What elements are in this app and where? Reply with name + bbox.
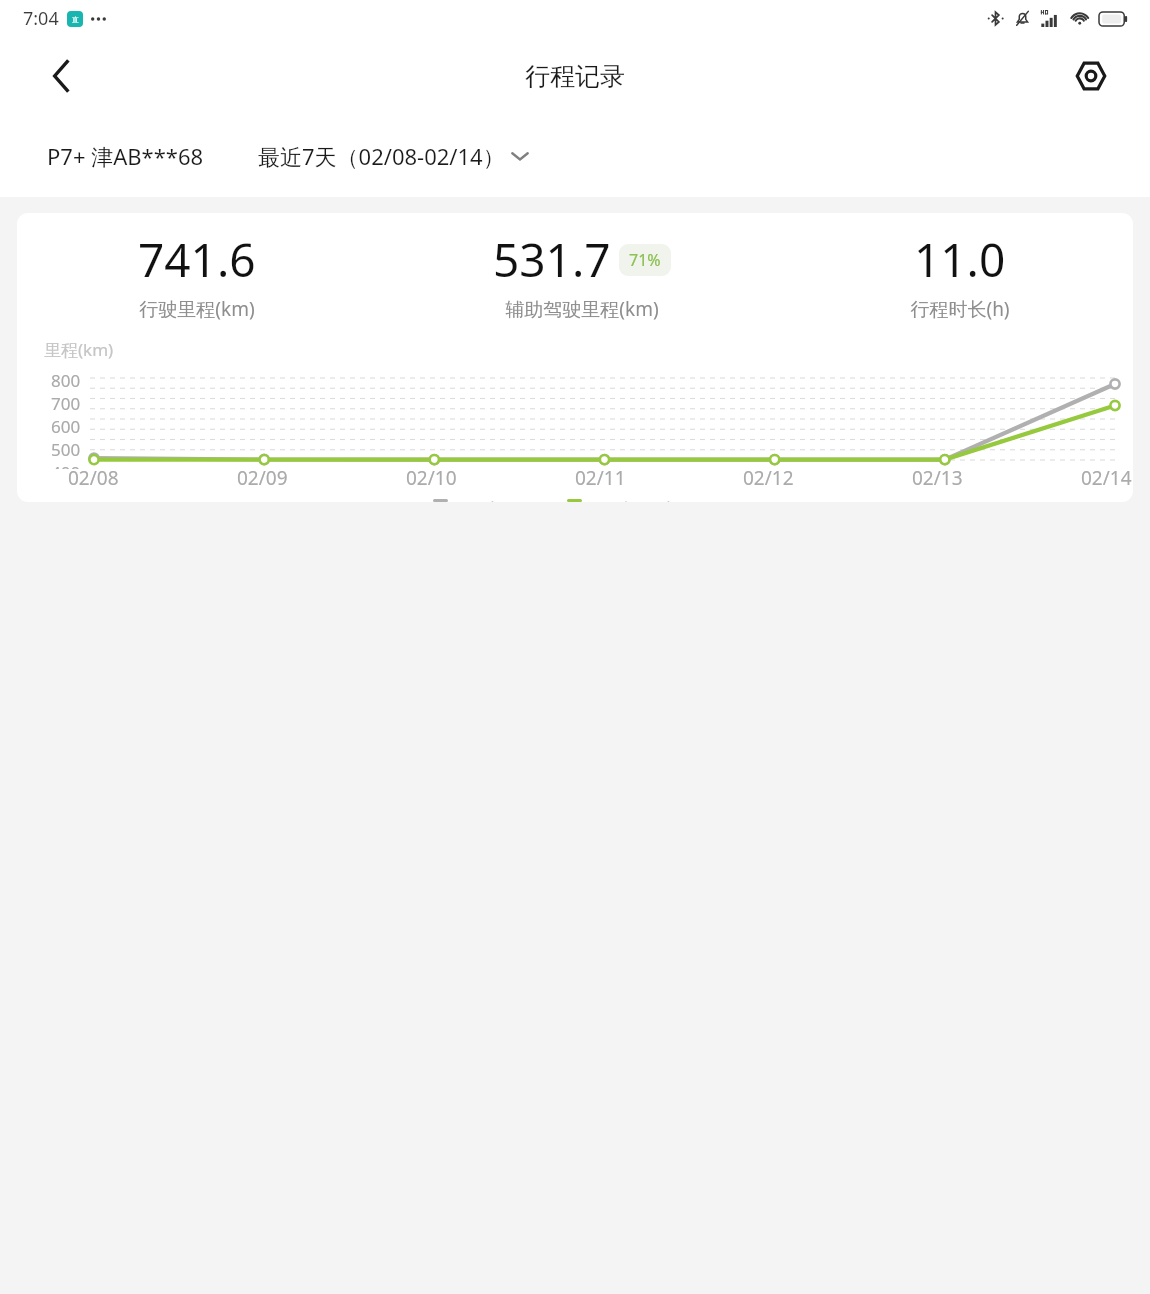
staticText: 02/10	[406, 465, 457, 491]
staticText: 02/09	[237, 465, 288, 491]
staticText: 02/12	[743, 465, 794, 491]
staticText: 最近7天（02/08-02/14）	[258, 141, 505, 171]
staticText: 11.0	[914, 228, 1006, 291]
staticText: P7+ 津AB***68	[47, 141, 204, 171]
staticText: 500	[51, 438, 81, 461]
staticText: 直	[72, 15, 79, 24]
staticText: 里程(km)	[44, 338, 114, 361]
staticText: 700	[51, 392, 81, 415]
staticText: 02/13	[912, 465, 963, 491]
button[interactable]: 最近7天（02/08-02/14）	[258, 141, 531, 171]
button[interactable]: 辅助驾驶里程	[567, 499, 717, 502]
staticText: 600	[51, 415, 81, 438]
button[interactable]: Settings	[1064, 49, 1118, 103]
button[interactable]: P7+ 津AB***68	[47, 141, 204, 171]
button[interactable]: 行驶里程	[433, 499, 541, 502]
staticText: 531.7	[493, 228, 611, 291]
staticText: 辅助驾驶里程	[591, 499, 717, 502]
staticText: 800	[51, 369, 81, 392]
staticText: 行程记录	[525, 61, 625, 92]
staticText: 行驶里程	[457, 499, 541, 502]
staticText: 02/08	[68, 465, 119, 491]
button[interactable]: Back	[34, 49, 88, 103]
staticText: 辅助驾驶里程(km)	[505, 296, 659, 322]
staticText: 02/11	[575, 465, 626, 491]
staticText: 02/14	[1081, 465, 1132, 491]
staticText: 400	[51, 461, 81, 469]
staticText: 741.6	[138, 228, 256, 291]
staticText: 7:04	[23, 6, 59, 31]
staticText: 71%	[629, 249, 661, 271]
staticText: 行程时长(h)	[910, 296, 1010, 322]
staticText: 行驶里程(km)	[139, 296, 255, 322]
